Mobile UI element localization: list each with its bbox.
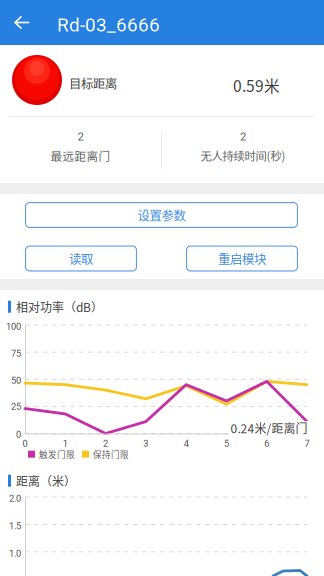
staticText: 2 (77, 130, 83, 143)
staticText: 2.0 (9, 493, 21, 504)
staticText: 读取 (69, 249, 93, 267)
button[interactable]: 设置参数 (25, 202, 298, 228)
staticText: 触发门限 (39, 448, 75, 460)
staticText: 相对功率（dB） (16, 298, 103, 315)
staticText: 5 (224, 438, 229, 449)
staticText: 7 (304, 438, 309, 449)
staticText: 目标距离 (69, 74, 117, 92)
staticText: 100 (6, 321, 21, 332)
staticText: 1 (63, 438, 68, 449)
button[interactable]: 读取 (25, 245, 137, 271)
staticText: 25 (11, 401, 21, 412)
button[interactable]: Back (5, 0, 39, 45)
staticText: 1.5 (9, 520, 21, 531)
button[interactable]: 重启模块 (186, 245, 298, 271)
staticText: 6 (264, 438, 269, 449)
staticText: 无人持续时间(秒) (200, 147, 285, 164)
staticText: 重启模块 (218, 249, 266, 267)
staticText: 0.24米/距离门 (230, 419, 307, 437)
staticText: 0 (16, 429, 21, 440)
staticText: 0.59米 (233, 74, 280, 97)
staticText: 0 (22, 438, 27, 449)
staticText: 3 (143, 438, 148, 449)
staticText: 75 (11, 348, 21, 359)
staticText: 保持门限 (93, 448, 129, 460)
staticText: 距离（米） (16, 472, 76, 489)
staticText: 最远距离门 (50, 147, 110, 164)
staticText: 设置参数 (137, 206, 185, 224)
staticText: 1.0 (9, 548, 21, 559)
staticText: 4 (184, 438, 189, 449)
staticText: 50 (11, 375, 21, 386)
staticText: 2 (103, 438, 108, 449)
staticText: Rd-03_6666 (57, 14, 160, 36)
staticText: 2 (240, 130, 246, 143)
